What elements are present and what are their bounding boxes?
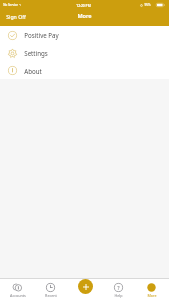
button[interactable]: Settings [0,44,169,62]
staticText: ? [117,284,120,291]
button[interactable]: More [135,278,168,300]
button[interactable]: Accounts [1,278,34,300]
button[interactable]: Recent [34,278,67,300]
staticText: Accounts [10,293,26,298]
staticText: About [24,67,42,75]
button[interactable]: Add [78,279,93,294]
staticText: 95% [144,3,151,7]
button[interactable]: Positive Pay [0,26,169,44]
staticText: No Service [3,3,18,7]
staticText: More [147,293,157,298]
staticText: Sign Off [6,13,26,20]
staticText: Help [114,293,123,298]
staticText: Recent [45,293,57,298]
button[interactable]: ? [102,278,135,300]
staticText: Settings [24,49,48,57]
staticText: 12:20 PM [76,3,91,7]
button[interactable]: About [0,62,169,79]
button[interactable]: Sign Off [4,12,28,21]
staticText: Positive Pay [24,31,59,39]
staticText: More [77,12,92,20]
